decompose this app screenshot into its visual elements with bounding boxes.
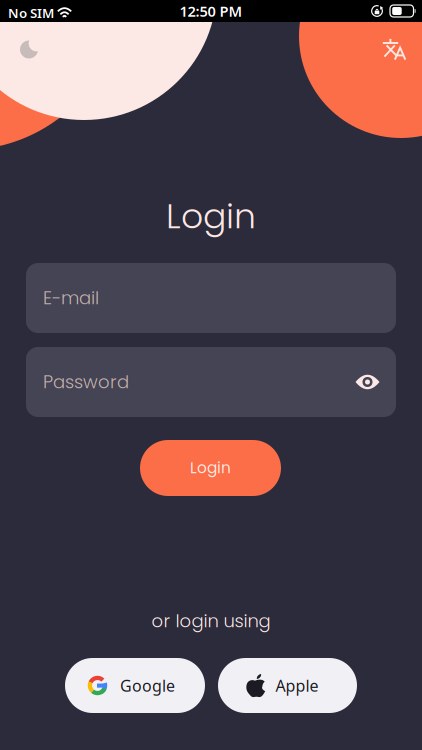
staticText: Login	[166, 192, 256, 240]
staticText: Apple	[275, 675, 318, 696]
button[interactable]: Translate	[371, 27, 417, 71]
staticText: or login using	[151, 608, 270, 634]
staticText: Password	[43, 369, 129, 395]
staticText: Google	[120, 675, 175, 696]
button[interactable]: Google	[65, 658, 205, 713]
staticText: E-mail	[43, 285, 99, 311]
staticText: Login	[190, 457, 231, 479]
button[interactable]: Show password	[351, 369, 384, 394]
button[interactable]: Apple	[218, 658, 357, 713]
button[interactable]: Login	[140, 440, 281, 496]
staticText: No SIM	[8, 4, 54, 22]
staticText: 12:50 PM	[179, 1, 242, 21]
button[interactable]: Dark mode	[9, 29, 49, 70]
